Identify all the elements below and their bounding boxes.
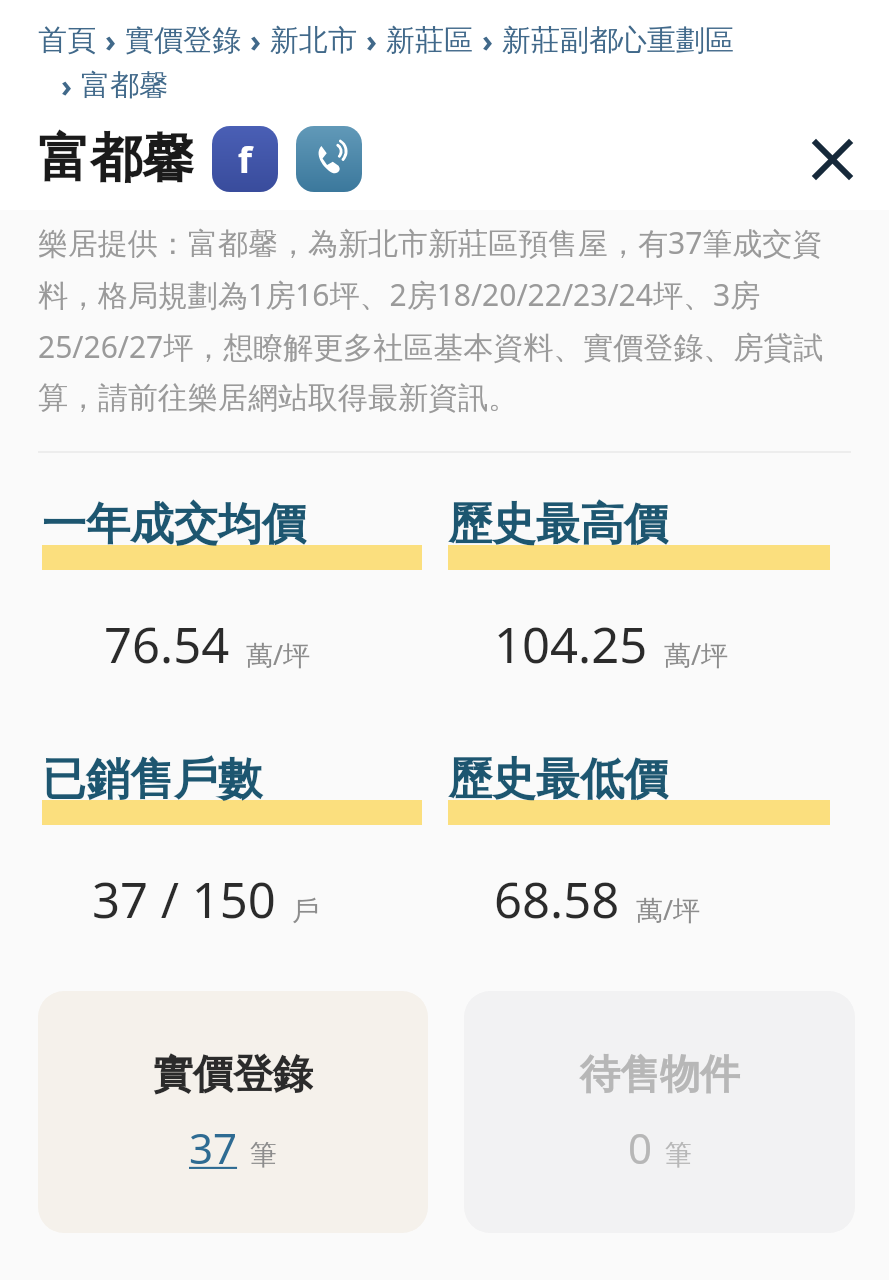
staticText: 37 / 150 [92, 866, 276, 933]
staticText: 一年成交均價 [42, 497, 306, 552]
staticText: 歷史最低價 [448, 752, 668, 807]
staticText: 筆 [250, 1138, 277, 1172]
staticText: › [366, 20, 377, 61]
staticText: 歷史最高價 [448, 497, 668, 552]
staticText: 富都馨 [38, 126, 194, 192]
button[interactable]: 新北市 [270, 22, 357, 59]
button[interactable]: 新莊區 [386, 22, 473, 59]
staticText: › [250, 20, 261, 61]
button[interactable]: Close [801, 128, 863, 190]
button[interactable]: 實價登錄 [38, 991, 428, 1233]
staticText: 已銷售戶數 [42, 752, 262, 807]
staticText: f [238, 135, 252, 184]
staticText: 104.25 [494, 611, 648, 678]
staticText: 76.54 [104, 611, 230, 678]
staticText: 37 [189, 1119, 238, 1176]
staticText: 萬/坪 [246, 636, 311, 673]
staticText: 戶 [292, 894, 319, 928]
button[interactable]: Share on Facebook [212, 126, 278, 192]
staticText: 萬/坪 [636, 891, 701, 928]
staticText: 萬/坪 [664, 636, 729, 673]
staticText: 待售物件 [580, 1049, 740, 1099]
button[interactable]: Call [296, 126, 362, 192]
staticText: 68.58 [494, 866, 620, 933]
staticText: › [61, 65, 72, 106]
staticText: 樂居提供：富都馨，為新北市新莊區預售屋，有37筆成交資料，格局規劃為1房16坪、… [38, 222, 855, 417]
staticText: 實價登錄 [153, 1049, 313, 1099]
button[interactable]: 新莊副都心重劃區 [502, 22, 734, 59]
staticText: › [482, 20, 493, 61]
staticText: 筆 [665, 1138, 692, 1172]
button[interactable]: 實價登錄 [125, 22, 241, 59]
button[interactable]: 待售物件 [464, 991, 855, 1233]
button[interactable]: 首頁 [38, 22, 96, 59]
staticText: › [105, 20, 116, 61]
button[interactable]: 富都馨 [81, 67, 168, 104]
staticText: 0 [628, 1119, 653, 1176]
